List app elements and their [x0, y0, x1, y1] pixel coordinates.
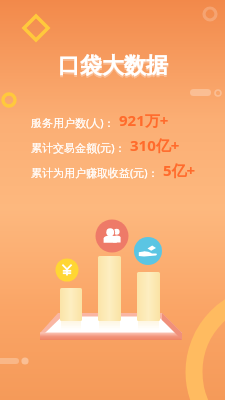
staticText: 310亿+ — [130, 135, 180, 155]
staticText: 口袋大数据 — [58, 54, 168, 82]
staticText: 累计为用户赚取收益(元)： — [31, 165, 159, 180]
staticText: 5亿+ — [163, 160, 196, 180]
staticText: 服务用户数(人)： — [31, 115, 115, 130]
staticText: 累计交易金额(元)： — [31, 140, 126, 155]
staticText: 921万+ — [119, 110, 169, 130]
staticText: 口袋大数据 — [58, 52, 168, 80]
